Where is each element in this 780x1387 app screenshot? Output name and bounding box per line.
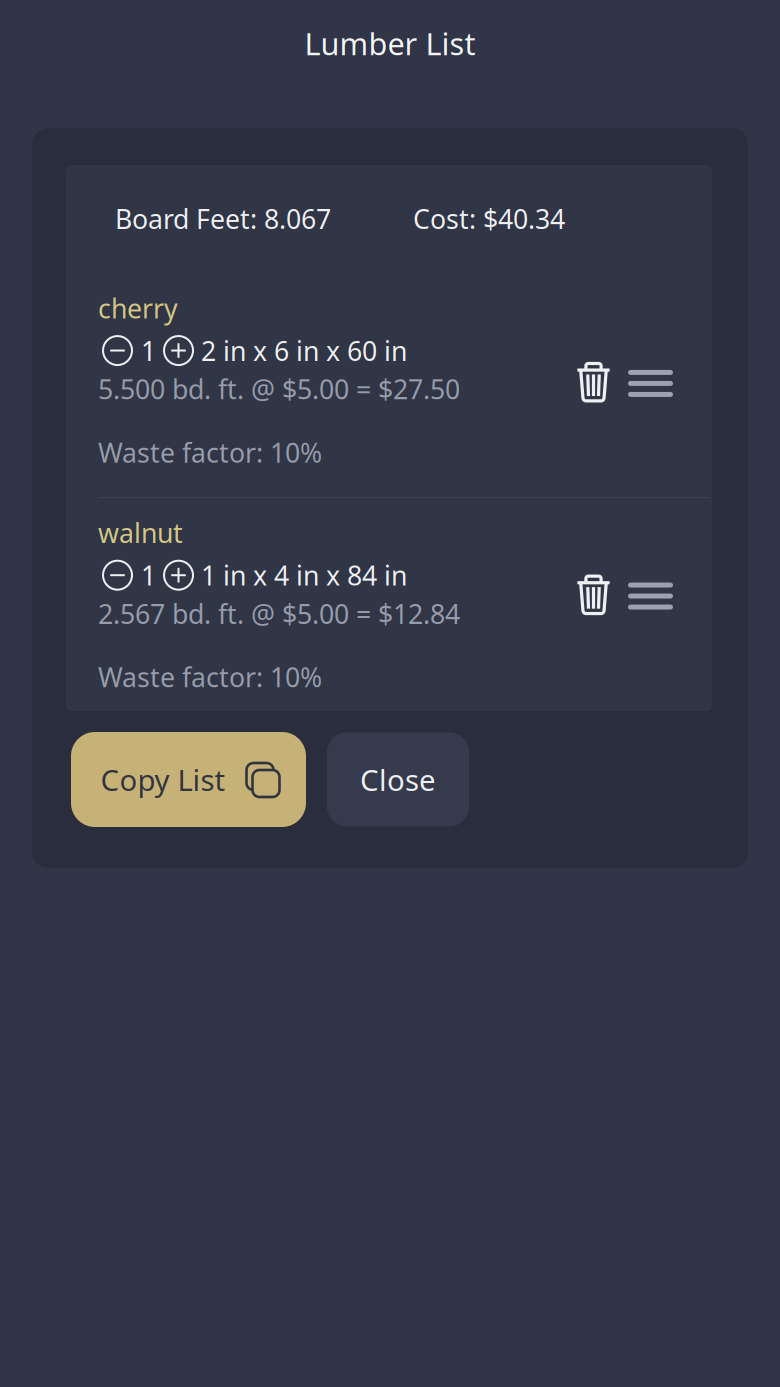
button[interactable]: Decrease quantity of cherry	[98, 335, 133, 366]
staticText: Copy List	[100, 760, 225, 799]
staticText: cherry	[98, 290, 178, 326]
staticText: Close	[360, 760, 436, 799]
button[interactable]: Copy List	[71, 732, 306, 827]
button[interactable]: Delete cherry	[575, 358, 612, 402]
staticText: 1	[141, 333, 156, 368]
button[interactable]: Close	[327, 732, 469, 826]
button[interactable]: Reorder walnut	[628, 580, 673, 607]
staticText: Waste factor: 10%	[98, 435, 322, 470]
button[interactable]: Reorder cherry	[628, 367, 673, 394]
staticText: Board Feet: 8.067	[115, 201, 331, 236]
staticText: 1	[141, 557, 156, 593]
staticText: 1 in x 4 in x 84 in	[201, 557, 407, 593]
staticText: walnut	[98, 515, 183, 550]
button[interactable]: Increase quantity of walnut	[163, 560, 194, 591]
staticText: Cost: $40.34	[413, 201, 565, 236]
button[interactable]: Increase quantity of cherry	[163, 335, 194, 366]
staticText: Lumber List	[304, 23, 475, 64]
staticText: Waste factor: 10%	[98, 659, 322, 695]
button[interactable]: Delete walnut	[575, 571, 612, 615]
button[interactable]: Decrease quantity of walnut	[98, 560, 133, 591]
staticText: 5.500 bd. ft. @ $5.00 = $27.50	[98, 371, 460, 407]
staticText: 2.567 bd. ft. @ $5.00 = $12.84	[98, 596, 460, 631]
staticText: 2 in x 6 in x 60 in	[201, 333, 407, 368]
